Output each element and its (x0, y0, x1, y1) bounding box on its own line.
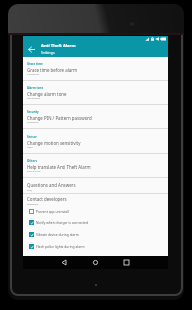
staticText: Notify when charger is connected (36, 220, 88, 224)
staticText: Change alarm tone (27, 91, 67, 97)
staticText: Vibrate device during alarm (36, 232, 79, 236)
button[interactable]: Back (57, 256, 71, 269)
button[interactable]: Prevent app uninstall (23, 205, 168, 217)
staticText: FAQ (27, 188, 32, 191)
button[interactable]: Vibrate device during alarm (23, 228, 168, 240)
button[interactable]: Others (23, 154, 168, 178)
button[interactable]: Navigate up (25, 43, 37, 55)
staticText: High (27, 145, 33, 148)
button[interactable]: Home (88, 256, 102, 269)
button[interactable]: Alarm tone (23, 81, 168, 105)
staticText: Contact developers (27, 196, 67, 202)
staticText: Anti Theft Alarm (41, 43, 76, 49)
staticText: Prevent app uninstall (36, 209, 69, 213)
staticText: 5 Seconds (27, 72, 39, 75)
staticText: Settings (41, 50, 55, 55)
staticText: Grace time before alarm (27, 67, 78, 73)
staticText: Flash police lights during alarm (36, 244, 85, 248)
button[interactable]: Sensor (23, 130, 168, 154)
button[interactable]: Notify when charger is connected (23, 216, 168, 228)
staticText: Grace time (27, 62, 43, 66)
button[interactable]: Contact developers (23, 193, 168, 205)
staticText: Help translate Anti Theft Alarm (27, 164, 91, 170)
button[interactable]: Recent apps (119, 256, 133, 269)
staticText: Sensor (27, 135, 37, 139)
button[interactable]: Flash police lights during alarm (23, 240, 168, 252)
button[interactable]: Security (23, 105, 168, 129)
staticText: Security (27, 110, 39, 114)
staticText: Change motion sensitivity (27, 140, 81, 146)
staticText: Others (27, 159, 37, 163)
staticText: Feedback (27, 202, 39, 205)
staticText: Fire engine (27, 96, 41, 99)
button[interactable]: Questions and Answers (23, 179, 168, 194)
staticText: Password (27, 120, 39, 123)
staticText: TRANSLATE (27, 169, 41, 172)
staticText: Alarm tone (27, 86, 44, 90)
staticText: Questions and Answers (27, 182, 76, 188)
staticText: Change PIN / Pattern password (27, 115, 92, 121)
button[interactable]: Grace time (23, 57, 168, 81)
